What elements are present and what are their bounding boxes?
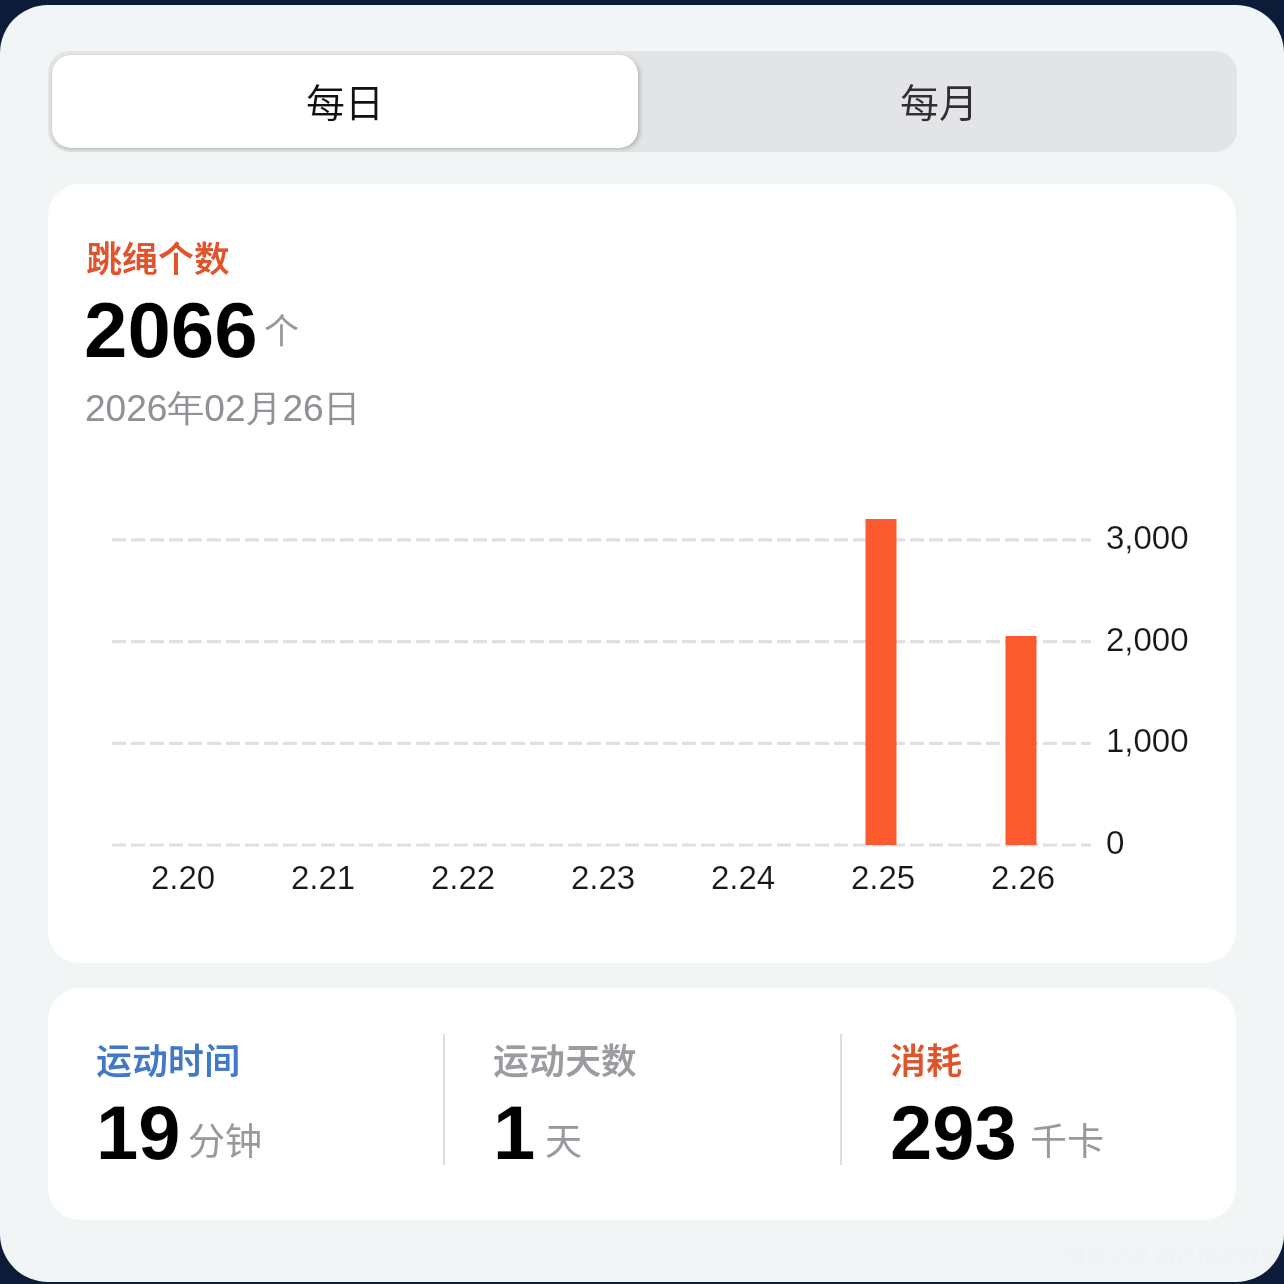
staticText: 0 [1106,824,1125,861]
staticText: 2.23 [571,859,636,896]
staticText: 2.20 [151,859,216,896]
staticText: 天 [545,1112,582,1166]
staticText: 2.22 [431,859,496,896]
staticText: 千卡 [1030,1112,1104,1166]
staticText: 运动天数 [493,1032,638,1084]
button[interactable]: 运动时间 [48,988,443,1220]
staticText: 2026年02月26日 [85,385,361,432]
staticText: 3,000 [1106,519,1189,556]
staticText: 19 [96,1090,181,1175]
other: Jump rope count bar chart [48,184,1236,963]
staticText: 2066 [84,286,258,373]
staticText: 每日 [306,72,385,128]
button[interactable]: 跳绳个数 [48,184,1236,963]
button[interactable]: 消耗 [842,988,1236,1220]
staticText: 运动时间 [96,1032,241,1084]
staticText: 1,000 [1106,722,1189,759]
staticText: 分钟 [188,1112,262,1166]
staticText: 293 [890,1090,1017,1175]
staticText: 每月 [900,72,979,128]
staticText: 2.25 [851,859,916,896]
staticText: 2,000 [1106,621,1189,658]
staticText: 跳绳个数 [86,230,231,282]
button[interactable]: 运动天数 [445,988,840,1220]
staticText: 健身记录 每日运动数据 [1066,1241,1281,1271]
staticText: 消耗 [890,1032,963,1084]
button[interactable]: 每日 [52,55,638,148]
staticText: 1 [493,1090,536,1175]
staticText: 2.21 [291,859,356,896]
staticText: 2.26 [991,859,1056,896]
staticText: 2.24 [711,859,776,896]
button[interactable]: 每月 [642,51,1237,152]
staticText: 个 [264,303,300,354]
